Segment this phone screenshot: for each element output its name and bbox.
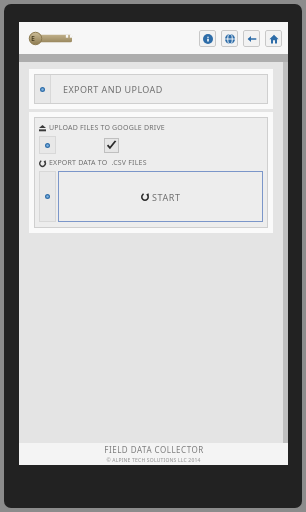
staticText: FIELD DATA COLLECTOR [104, 444, 204, 455]
button[interactable]: Back [243, 30, 260, 47]
button[interactable]: Upload to Google Drive checkbox [104, 138, 119, 153]
button[interactable]: Language [221, 30, 238, 47]
staticText: UPLOAD FILES TO GOOGLE DRIVE [49, 123, 165, 133]
button[interactable]: Info [199, 30, 216, 47]
button[interactable]: EXPORT AND UPLOAD [34, 74, 268, 104]
staticText: EXPORT AND UPLOAD [63, 83, 163, 95]
button[interactable]: START [58, 171, 263, 222]
staticText: EXPORT DATA TO .CSV FILES [49, 158, 147, 168]
staticText: E [31, 34, 35, 44]
staticText: © ALPINE TECH SOLUTIONS LLC 2014 [106, 457, 201, 464]
button[interactable]: Home [265, 30, 282, 47]
staticText: START [152, 191, 181, 203]
